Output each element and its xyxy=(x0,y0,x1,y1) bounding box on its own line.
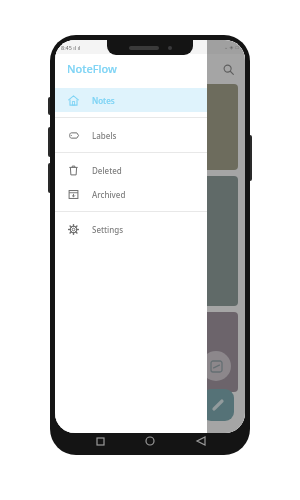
button[interactable]: Ideas xyxy=(62,176,238,306)
staticText: app concept redesign new feature marketi… xyxy=(69,197,120,237)
staticText: Archived xyxy=(92,189,126,200)
staticText: milk bread eggs vegetables fruit xyxy=(69,105,105,155)
staticText: 8:45 ıl ıl xyxy=(61,44,81,51)
button[interactable]: Archived xyxy=(55,182,207,206)
button[interactable]: Voice note xyxy=(201,351,231,381)
button[interactable]: Recent apps xyxy=(89,433,111,449)
button[interactable]: Back xyxy=(190,433,212,449)
staticText: ⌄ ◈ ▭ xyxy=(224,44,240,51)
button[interactable]: Notes xyxy=(55,88,207,112)
button[interactable]: Home xyxy=(139,433,161,449)
staticText: 8:45 xyxy=(60,43,72,51)
button[interactable]: Labels xyxy=(55,123,207,147)
button[interactable]: Settings xyxy=(55,217,207,241)
staticText: NoteFlow xyxy=(67,61,117,76)
button[interactable]: New note xyxy=(202,389,234,421)
staticText: Deleted xyxy=(92,165,122,176)
staticText: Notes xyxy=(92,95,115,106)
staticText: Settings xyxy=(92,224,124,235)
button[interactable]: Grocery list xyxy=(62,84,238,170)
staticText: Ideas xyxy=(69,183,91,194)
staticText: Labels xyxy=(92,130,117,141)
button[interactable]: Deleted xyxy=(55,158,207,182)
staticText: Grocery list xyxy=(69,91,115,102)
button[interactable]: Watch list xyxy=(62,312,238,392)
button[interactable]: Search xyxy=(219,60,237,78)
